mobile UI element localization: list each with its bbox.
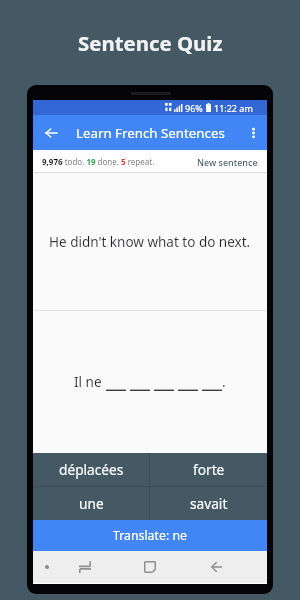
staticText: Translate: ne	[113, 527, 187, 544]
staticText: He didn't know what to do next.	[49, 233, 251, 251]
button[interactable]: Back	[203, 551, 229, 583]
staticText: Il ne	[74, 373, 102, 391]
staticText: forte	[193, 460, 225, 479]
button[interactable]: More options	[240, 115, 267, 150]
button[interactable]: Recent apps	[137, 551, 163, 583]
staticText: 11:22 am	[214, 102, 253, 114]
staticText: 9,976 todo. 19 done. 5 repeat.	[42, 156, 155, 167]
staticText: Learn French Sentences	[76, 124, 225, 142]
button[interactable]: Assistant	[37, 551, 57, 583]
staticText: déplacées	[59, 460, 124, 479]
button[interactable]: Switch keyboard	[72, 551, 98, 583]
button[interactable]: une	[33, 487, 149, 520]
staticText: New sentence	[197, 156, 258, 168]
button[interactable]: déplacées	[33, 453, 149, 486]
staticText: savait	[190, 494, 228, 513]
button[interactable]: New sentence	[197, 156, 258, 168]
staticText: une	[79, 494, 104, 513]
button[interactable]: forte	[150, 453, 267, 486]
button[interactable]: Translate: ne	[33, 520, 267, 551]
button[interactable]: savait	[150, 487, 267, 520]
button[interactable]: Back	[33, 115, 68, 150]
staticText: 96%	[185, 102, 203, 114]
staticText: Sentence Quiz	[78, 29, 223, 57]
staticText: .	[222, 373, 226, 391]
